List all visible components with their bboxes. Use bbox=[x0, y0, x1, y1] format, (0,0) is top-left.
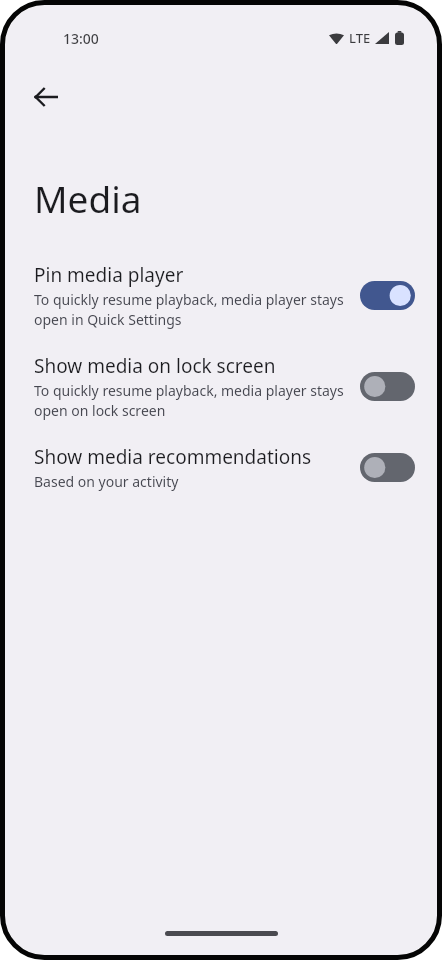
staticText: To quickly resume playback, media player… bbox=[34, 290, 346, 329]
staticText: To quickly resume playback, media player… bbox=[34, 381, 346, 420]
button[interactable]: Show media recommendations bbox=[5, 442, 437, 493]
button[interactable]: Pin media player, on bbox=[360, 281, 415, 310]
button[interactable]: Show media on lock screen, off bbox=[360, 372, 415, 401]
staticText: Pin media player bbox=[34, 262, 184, 288]
staticText: Show media on lock screen bbox=[34, 353, 276, 379]
button[interactable]: Show media recommendations, off bbox=[360, 453, 415, 482]
staticText: LTE bbox=[349, 29, 371, 47]
staticText: Based on your activity bbox=[34, 472, 179, 491]
staticText: Media bbox=[34, 173, 142, 223]
staticText: 13:00 bbox=[63, 29, 99, 48]
staticText: Show media recommendations bbox=[34, 444, 312, 470]
button[interactable]: Pin media player bbox=[5, 260, 437, 331]
button[interactable]: Back bbox=[20, 71, 72, 123]
button[interactable]: Show media on lock screen bbox=[5, 351, 437, 422]
